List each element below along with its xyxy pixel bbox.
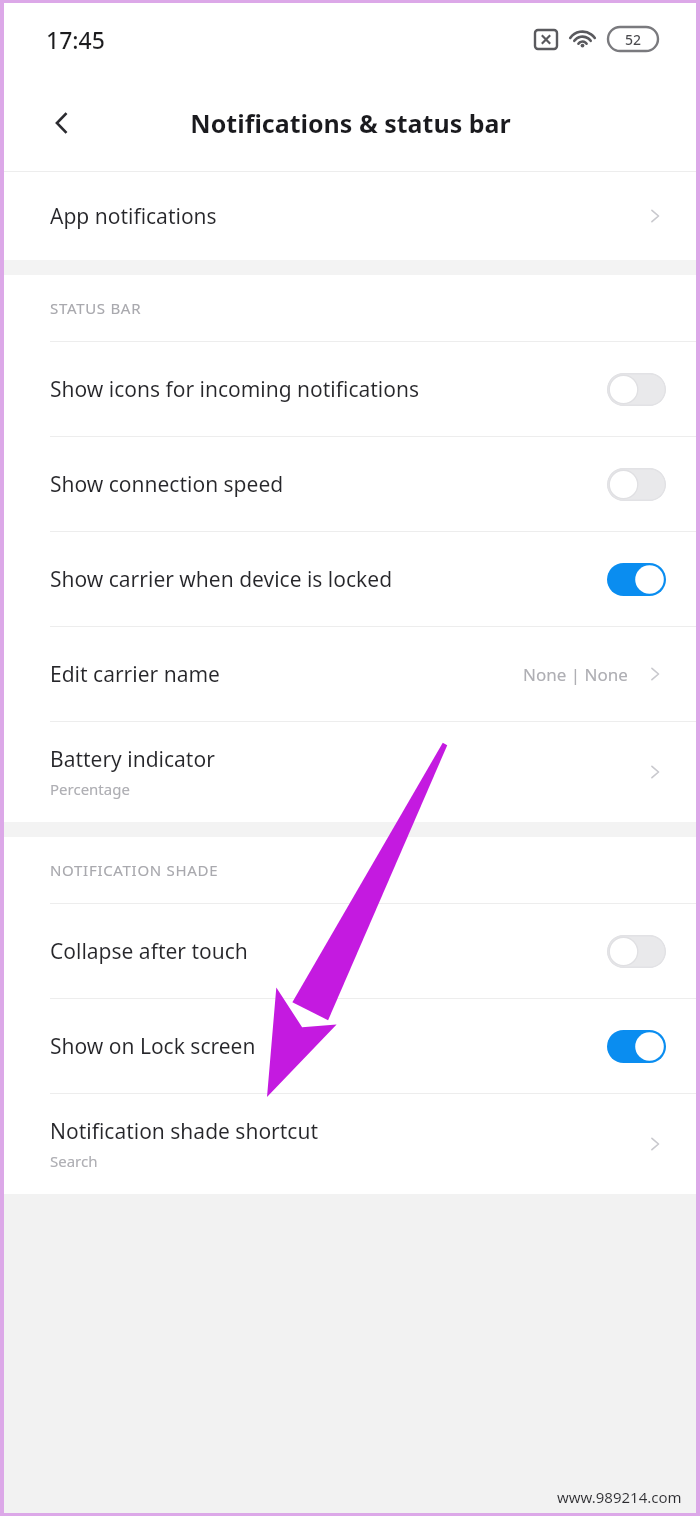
button[interactable]: Show connection speed <box>4 437 696 531</box>
button[interactable]: Battery indicator <box>4 722 696 822</box>
staticText: Notifications & status bar <box>190 106 511 140</box>
button[interactable]: On <box>607 563 666 596</box>
button[interactable]: Off <box>607 468 666 501</box>
button[interactable]: Off <box>607 935 666 968</box>
button[interactable]: Show carrier when device is locked <box>4 532 696 626</box>
staticText: STATUS BAR <box>50 298 142 318</box>
staticText: www.989214.com <box>557 1487 682 1507</box>
button[interactable]: Off <box>607 373 666 406</box>
button[interactable]: Show on Lock screen <box>4 999 696 1093</box>
button[interactable]: Show icons for incoming notifications <box>4 342 696 436</box>
staticText: None | None <box>523 663 628 686</box>
button[interactable]: On <box>607 1030 666 1063</box>
staticText: NOTIFICATION SHADE <box>50 860 219 880</box>
staticText: Notification shade shortcut <box>50 1117 318 1146</box>
staticText: Show carrier when device is locked <box>50 565 393 594</box>
staticText: Battery indicator <box>50 745 215 774</box>
staticText: Show on Lock screen <box>50 1032 256 1061</box>
button[interactable]: Collapse after touch <box>4 904 696 998</box>
staticText: Percentage <box>50 779 130 799</box>
staticText: Show connection speed <box>50 470 284 499</box>
staticText: 17:45 <box>46 24 105 55</box>
staticText: Edit carrier name <box>50 660 220 689</box>
button[interactable]: Back <box>34 95 90 151</box>
staticText: Collapse after touch <box>50 937 248 966</box>
button[interactable]: App notifications <box>4 172 696 260</box>
staticText: Search <box>50 1151 98 1171</box>
button[interactable]: Edit carrier name <box>4 627 696 721</box>
button[interactable]: Notification shade shortcut <box>4 1094 696 1194</box>
staticText: 52 <box>625 30 642 49</box>
staticText: App notifications <box>50 202 217 231</box>
staticText: Show icons for incoming notifications <box>50 375 420 404</box>
